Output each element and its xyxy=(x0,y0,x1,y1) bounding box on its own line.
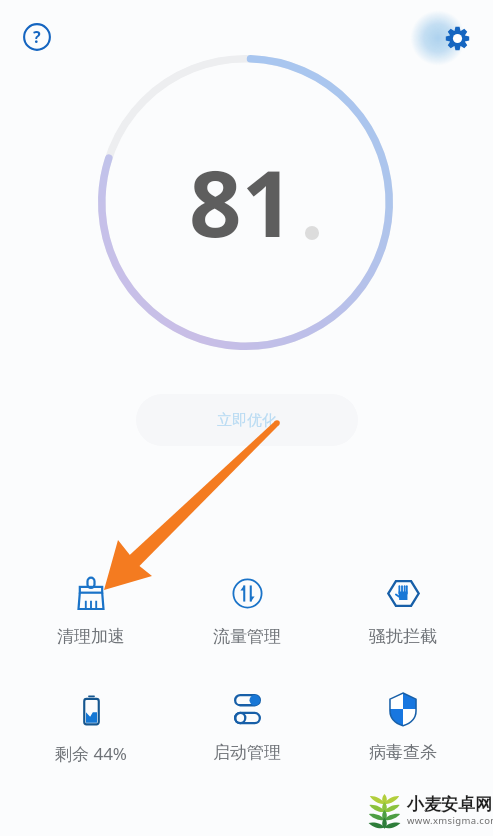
button[interactable]: 剩余 44% xyxy=(12,691,169,765)
staticText: 小麦安卓网 xyxy=(407,794,492,815)
staticText: 81 xyxy=(189,139,295,264)
button[interactable]: 启动管理 xyxy=(169,691,325,763)
button[interactable]: 立即优化 xyxy=(136,394,358,446)
staticText: 清理加速 xyxy=(57,626,125,647)
button[interactable]: Settings xyxy=(437,18,477,58)
staticText: 流量管理 xyxy=(213,626,281,647)
button[interactable]: Help xyxy=(17,17,57,57)
staticText: 剩余 44% xyxy=(55,742,127,765)
staticText: www.xmsigma.com xyxy=(407,814,493,827)
button[interactable]: 清理加速 xyxy=(12,575,169,647)
staticText: 骚扰拦截 xyxy=(369,626,437,647)
staticText: 立即优化 xyxy=(217,411,277,430)
staticText: ? xyxy=(33,26,41,48)
button[interactable]: 流量管理 xyxy=(169,575,325,647)
button[interactable]: 骚扰拦截 xyxy=(325,575,481,647)
staticText: 病毒查杀 xyxy=(369,742,437,763)
button[interactable]: 病毒查杀 xyxy=(325,691,481,763)
staticText: 启动管理 xyxy=(213,742,281,763)
